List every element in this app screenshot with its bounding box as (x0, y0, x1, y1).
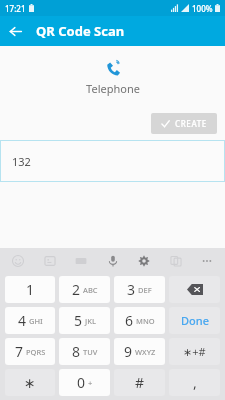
button[interactable]: 132 (0, 140, 225, 182)
staticText: Telephone (86, 81, 140, 96)
staticText: 2 (72, 280, 81, 299)
staticText: JKL (85, 316, 96, 326)
staticText: 0 (77, 373, 86, 392)
button[interactable]: 9 (114, 338, 165, 365)
staticText: # (135, 373, 145, 392)
button[interactable]: , (169, 369, 220, 396)
staticText: 132 (12, 154, 31, 169)
staticText: PQRS (26, 347, 46, 357)
staticText: 8 (72, 342, 81, 361)
button[interactable]: 4 (5, 307, 55, 334)
staticText: QR Code Scan (36, 22, 125, 40)
staticText: DEF (138, 285, 152, 295)
staticText: 7 (15, 342, 24, 361)
button[interactable]: 1 (5, 276, 55, 303)
staticText: 17:21 (5, 3, 26, 14)
button[interactable]: More options (195, 249, 219, 273)
button[interactable]: 3 (114, 276, 165, 303)
button[interactable]: Backspace (169, 276, 220, 303)
staticText: 4 (18, 311, 27, 330)
staticText: WXYZ (135, 347, 156, 357)
button[interactable]: Clipboard (164, 249, 188, 273)
staticText: 5 (74, 311, 83, 330)
button[interactable]: 2 (59, 276, 110, 303)
staticText: 9 (124, 342, 133, 361)
button[interactable]: 6 (114, 307, 165, 334)
button[interactable]: CREATE (151, 113, 217, 134)
staticText: ∗ (24, 375, 36, 391)
button[interactable]: 7 (5, 338, 55, 365)
button[interactable]: Sticker (38, 249, 62, 273)
staticText: TUV (83, 347, 98, 357)
button[interactable]: Settings (132, 249, 156, 273)
staticText: 100% (192, 3, 213, 14)
staticText: 3 (127, 280, 136, 299)
staticText: GHI (29, 316, 43, 326)
button[interactable]: ∗+# (169, 338, 220, 365)
button[interactable]: Voice input (101, 249, 125, 273)
button[interactable]: Back (0, 16, 30, 46)
button[interactable]: # (114, 369, 165, 396)
button[interactable]: 0 (59, 369, 110, 396)
button[interactable]: 5 (59, 307, 110, 334)
staticText: ABC (83, 285, 98, 295)
staticText: MNO (136, 316, 155, 326)
staticText: + (88, 378, 93, 388)
staticText: 6 (125, 311, 134, 330)
staticText: 1 (26, 280, 35, 299)
staticText: ∗+# (183, 344, 206, 359)
button[interactable]: ∗ (5, 369, 55, 396)
button[interactable]: Done (169, 307, 220, 334)
button[interactable]: GIF (69, 249, 93, 273)
staticText: , (193, 373, 197, 392)
staticText: CREATE (175, 118, 207, 129)
staticText: Done (181, 313, 209, 328)
button[interactable]: Emoji (6, 249, 30, 273)
button[interactable]: 8 (59, 338, 110, 365)
